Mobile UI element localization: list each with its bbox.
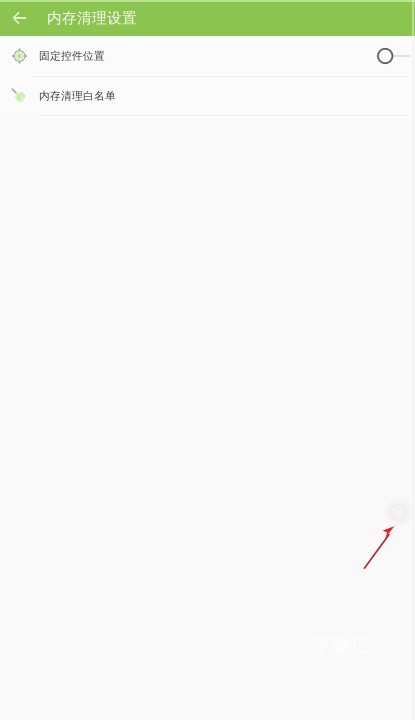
staticText: 内存清理白名单 — [39, 89, 116, 102]
button[interactable]: 固定控件位置 — [0, 36, 415, 76]
button[interactable]: Back — [0, 0, 33, 36]
staticText: 内存清理设置 — [47, 9, 137, 27]
staticText: 固定控件位置 — [39, 49, 105, 62]
button[interactable]: 内存清理白名单 — [0, 77, 415, 115]
button[interactable]: Floating memory cleaner — [385, 499, 412, 526]
